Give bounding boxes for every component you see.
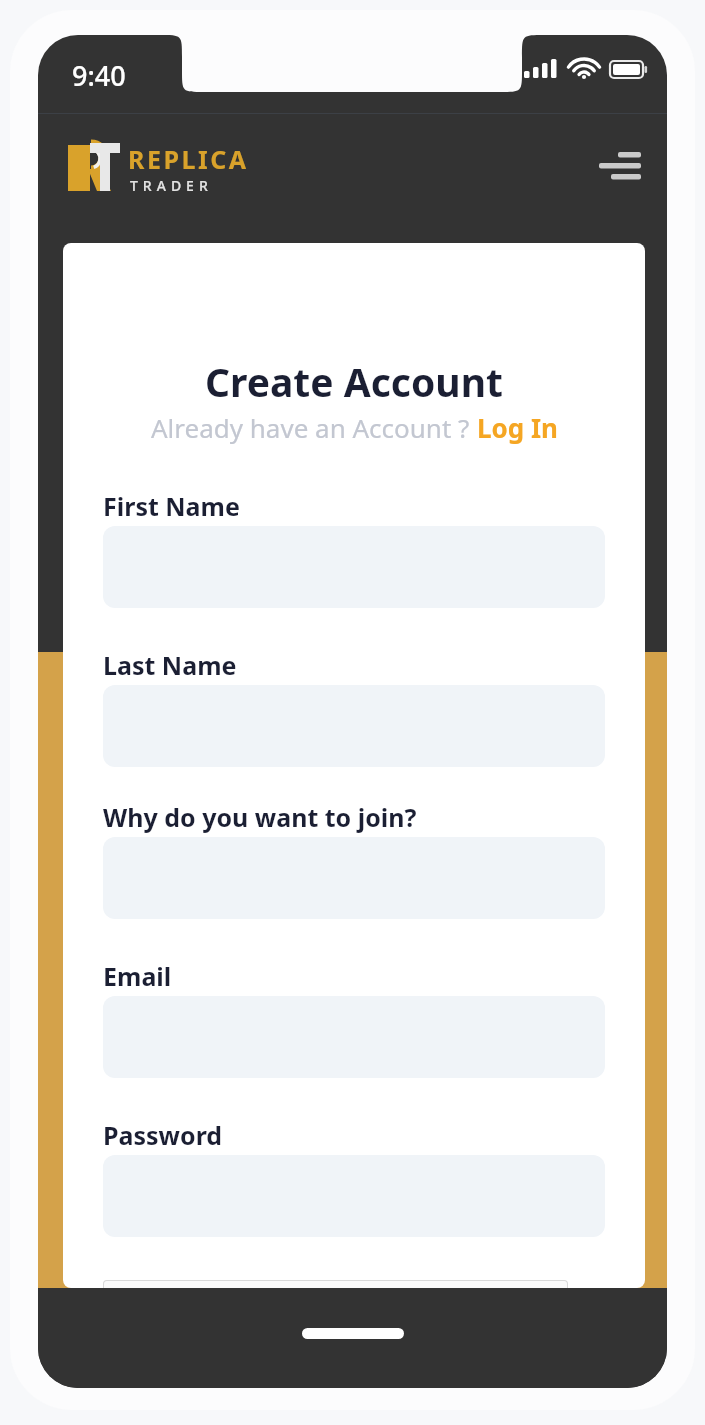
staticText: Why do you want to join?	[103, 800, 417, 834]
staticText: Create Account	[205, 355, 503, 408]
staticText: Last Name	[103, 648, 237, 682]
button[interactable]: I'm not a robot reCAPTCHA	[103, 1280, 568, 1288]
staticText: TRADER	[130, 176, 213, 195]
button[interactable]: Open menu	[588, 135, 650, 197]
staticText: REPLICA	[128, 142, 249, 176]
button[interactable]: Log In	[477, 410, 558, 445]
button[interactable]: REPLICA	[64, 141, 249, 195]
staticText: 9:40	[72, 57, 126, 94]
staticText: First Name	[103, 489, 240, 523]
staticText: Already have an Account ?	[151, 410, 477, 445]
staticText: Password	[103, 1118, 223, 1152]
staticText: Log In	[477, 410, 558, 445]
staticText: Email	[103, 959, 172, 993]
